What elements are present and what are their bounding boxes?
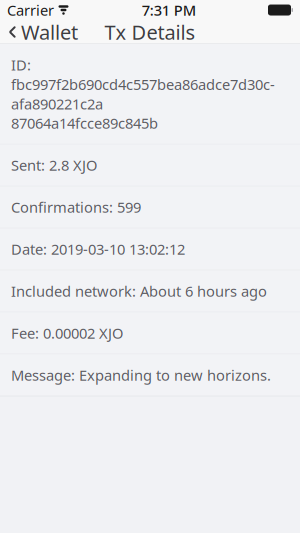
staticText: Confirmations: 599	[11, 197, 141, 217]
button[interactable]: Wallet	[0, 13, 78, 51]
button[interactable]: Confirmations: 599	[0, 186, 300, 228]
staticText: ID: fbc997f2b690cd4c557bea86adce7d30cafa…	[11, 55, 275, 133]
button[interactable]: Date: 2019-03-10 13:02:12	[0, 228, 300, 270]
staticText: Sent: 2.8 XJO	[11, 155, 97, 175]
staticText: Tx Details	[104, 19, 195, 45]
staticText: Wallet	[21, 19, 78, 45]
staticText: Included network: About 6 hours ago	[11, 281, 267, 301]
staticText: Fee: 0.00002 XJO	[11, 323, 123, 343]
staticText: Message: Expanding to new horizons.	[11, 365, 271, 385]
button[interactable]: Included network: About 6 hours ago	[0, 270, 300, 312]
staticText: Date: 2019-03-10 13:02:12	[11, 239, 185, 259]
staticText: Carrier	[7, 0, 54, 20]
button[interactable]: Fee: 0.00002 XJO	[0, 312, 300, 354]
button[interactable]: Sent: 2.8 XJO	[0, 144, 300, 186]
button[interactable]: ID: fbc997f2b690cd4c557bea86adce7d30cafa…	[0, 44, 300, 144]
button[interactable]: Message: Expanding to new horizons.	[0, 354, 300, 396]
staticText: 7:31 PM	[142, 0, 196, 20]
